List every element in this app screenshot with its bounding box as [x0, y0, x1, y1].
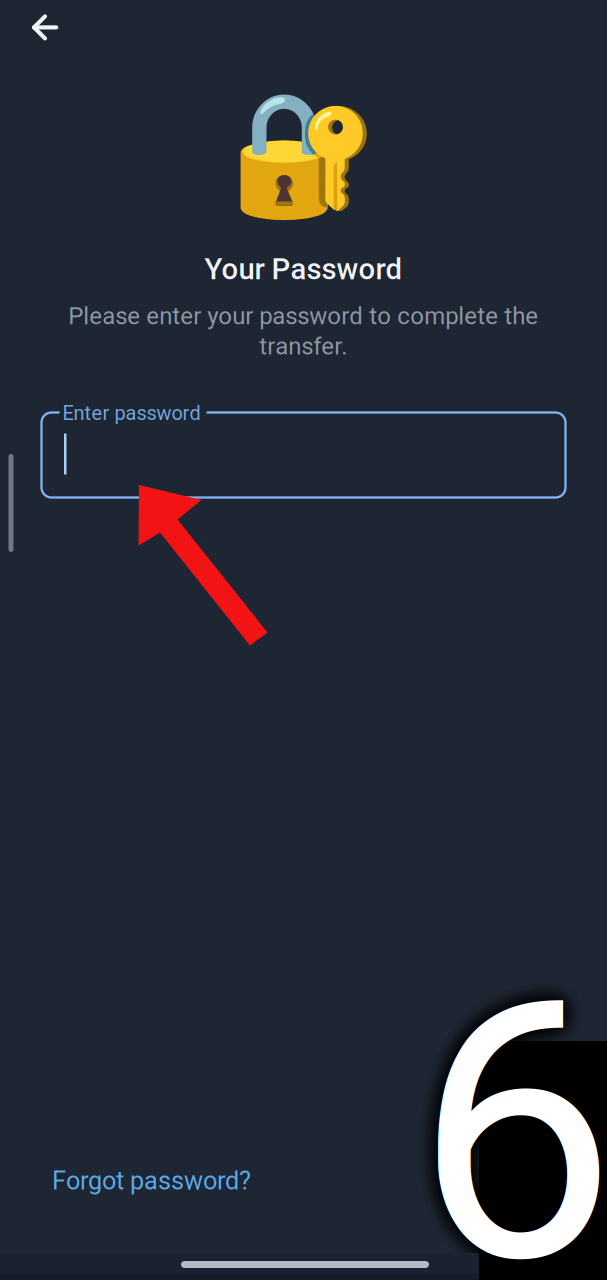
staticText: 6	[415, 924, 607, 1280]
staticText: Enter password	[62, 401, 200, 425]
staticText: 6	[415, 924, 607, 1280]
staticText: 6	[415, 924, 607, 1280]
staticText: 🔐	[229, 84, 378, 225]
staticText: 6	[415, 924, 607, 1280]
button[interactable]: Forgot password?	[38, 1154, 265, 1208]
staticText: Please enter your password to complete t…	[68, 302, 538, 360]
button[interactable]: Back	[0, 0, 86, 56]
button[interactable]: Enter password	[41, 412, 565, 497]
staticText: Your Password	[204, 252, 402, 286]
staticText: Forgot password?	[52, 1166, 251, 1196]
